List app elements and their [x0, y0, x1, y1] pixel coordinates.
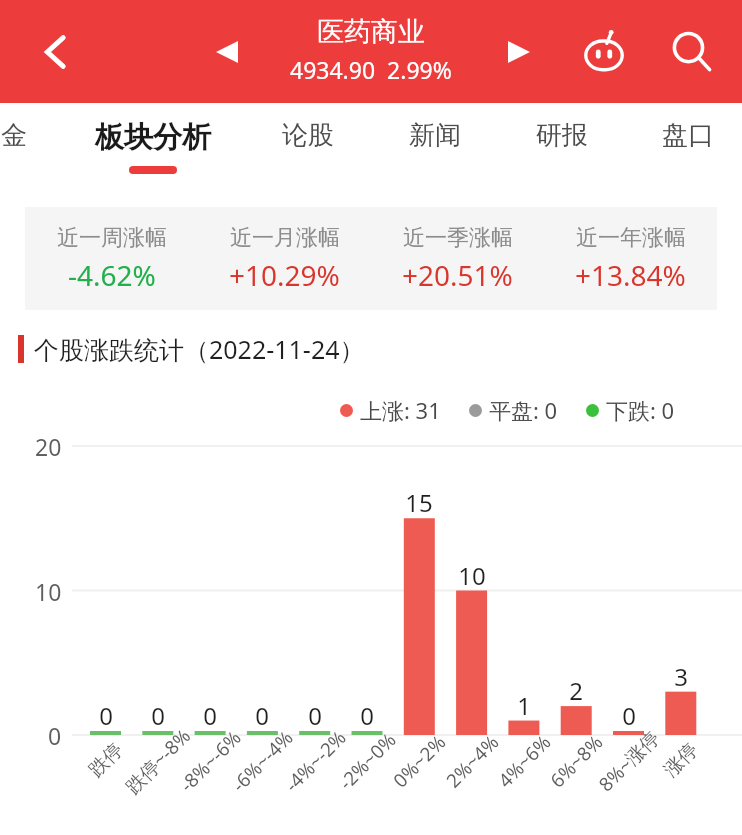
button[interactable]: AI assistant — [574, 22, 634, 82]
staticText: 10 — [458, 559, 486, 592]
staticText: 0 — [99, 699, 113, 732]
staticText: 跌停 — [84, 738, 128, 782]
staticText: -4.62% — [68, 256, 156, 294]
staticText: 金 — [1, 119, 27, 152]
staticText: 论股 — [282, 119, 334, 152]
staticText: 0 — [151, 699, 165, 732]
staticText: 2%~4% — [440, 729, 505, 793]
staticText: +20.51% — [402, 256, 513, 294]
staticText: 个股涨跌统计（2022-11-24） — [34, 332, 365, 366]
button[interactable]: 研报 — [492, 103, 632, 191]
staticText: 板块分析 — [95, 119, 211, 156]
staticText: 1 — [517, 689, 531, 722]
staticText: +13.84% — [575, 256, 686, 294]
staticText: 平盘: 0 — [489, 395, 558, 425]
staticText: 8%~涨停 — [593, 725, 665, 797]
staticText: 0 — [308, 699, 322, 732]
staticText: 20 — [35, 431, 62, 462]
staticText: 下跌: 0 — [606, 395, 675, 425]
staticText: 15 — [405, 486, 433, 519]
staticText: 0 — [255, 699, 269, 732]
button[interactable]: 新闻 — [365, 103, 505, 191]
staticText: 上涨: 31 — [360, 395, 441, 425]
staticText: 0 — [48, 720, 62, 751]
staticText: 6%~8% — [544, 729, 609, 793]
button[interactable]: 盘口 — [618, 103, 742, 191]
staticText: -6%~-4% — [226, 725, 299, 797]
button[interactable]: 金 — [0, 103, 84, 191]
staticText: 4%~6% — [492, 729, 557, 793]
staticText: 近一月涨幅 — [230, 224, 340, 252]
button[interactable]: Next sector — [492, 25, 546, 79]
button[interactable]: Search — [662, 22, 722, 82]
staticText: 0 — [203, 699, 217, 732]
staticText: 0 — [622, 699, 636, 732]
staticText: 涨停 — [659, 738, 703, 782]
staticText: 2 — [569, 674, 583, 707]
staticText: 0%~2% — [387, 729, 452, 793]
staticText: +10.29% — [229, 256, 340, 294]
staticText: 近一年涨幅 — [576, 224, 686, 252]
staticText: 研报 — [536, 119, 588, 152]
button[interactable]: 板块分析 — [83, 103, 223, 191]
button[interactable]: 论股 — [238, 103, 378, 191]
button[interactable]: Previous sector — [200, 25, 254, 79]
staticText: 4934.90 2.99% — [290, 54, 452, 85]
staticText: 3 — [674, 660, 688, 693]
button[interactable]: Back — [28, 24, 84, 80]
staticText: -2%~0% — [333, 727, 402, 795]
staticText: -4%~-2% — [279, 725, 352, 797]
staticText: 跌停~-8% — [120, 723, 196, 799]
staticText: 盘口 — [662, 119, 714, 152]
staticText: 近一季涨幅 — [403, 224, 513, 252]
staticText: 医药商业 — [317, 15, 425, 49]
staticText: 0 — [360, 699, 374, 732]
staticText: 新闻 — [409, 119, 461, 152]
staticText: 10 — [35, 576, 62, 607]
staticText: -8%~-6% — [174, 725, 247, 797]
staticText: 近一周涨幅 — [57, 224, 167, 252]
